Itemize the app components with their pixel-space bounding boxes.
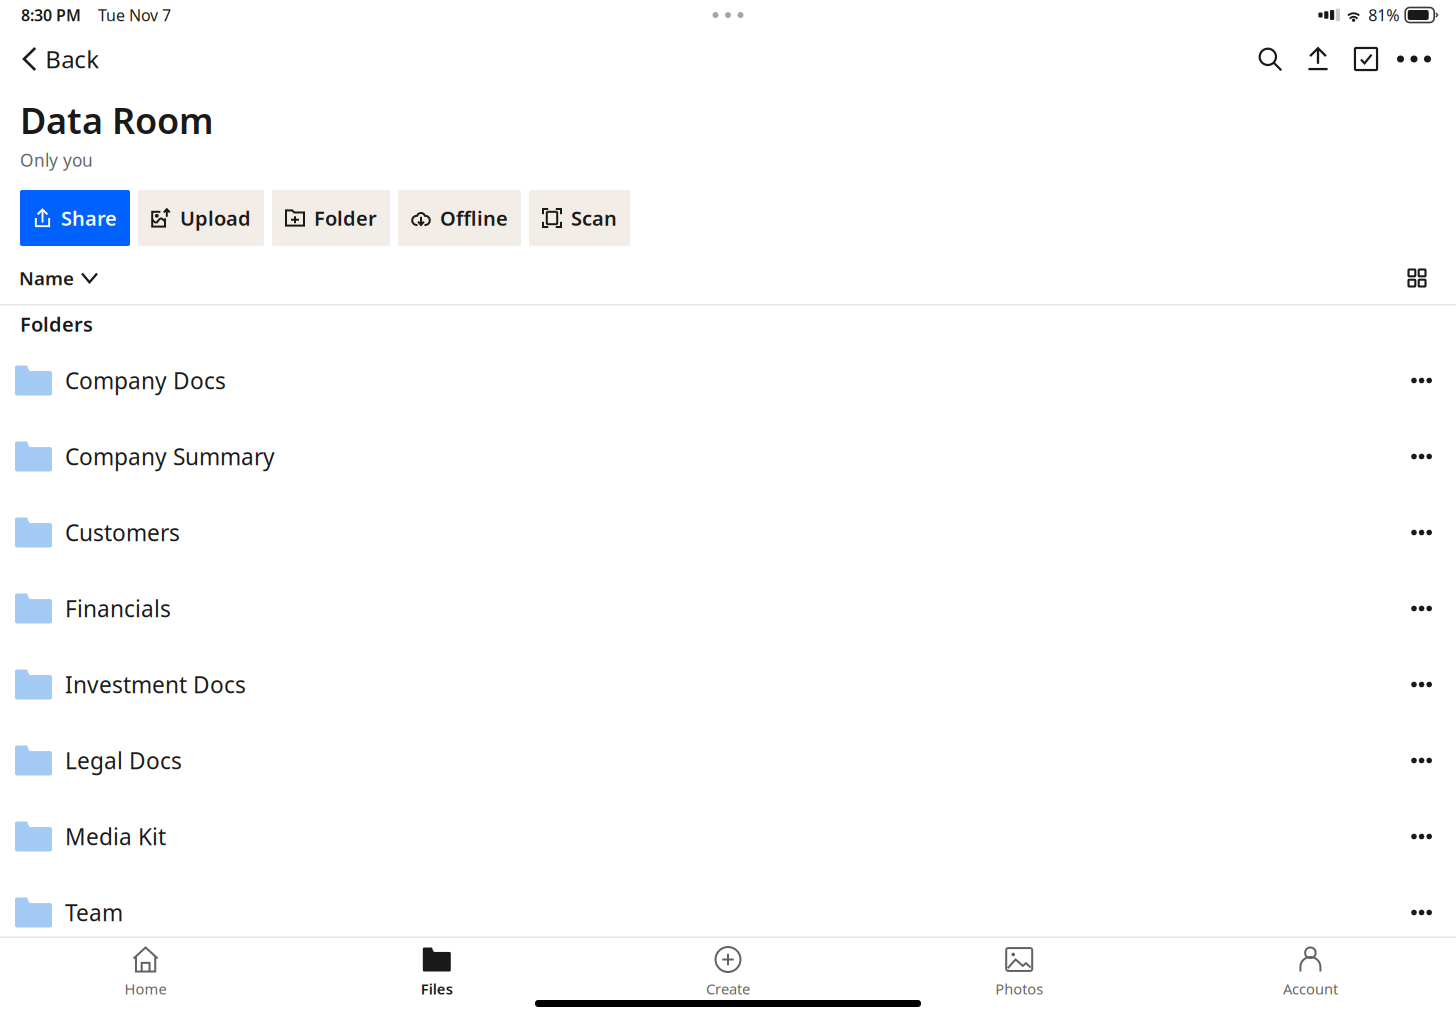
staticText: Folder <box>314 205 377 231</box>
staticText: Media Kit <box>65 821 166 851</box>
staticText: Company Docs <box>65 365 226 395</box>
staticText: Offline <box>440 205 508 231</box>
button[interactable]: Scan <box>529 190 630 246</box>
button[interactable]: Customers <box>0 494 1456 570</box>
staticText: Customers <box>65 517 180 547</box>
staticText: Data Room <box>20 96 214 144</box>
staticText: Only you <box>20 148 93 171</box>
staticText: 81% <box>1368 4 1399 26</box>
button[interactable]: Financials <box>0 570 1456 646</box>
button[interactable]: Upload <box>138 190 264 246</box>
button[interactable]: Investment Docs <box>0 646 1456 722</box>
button[interactable]: Photos <box>874 938 1165 1017</box>
button[interactable]: Team <box>0 874 1456 950</box>
staticText: Scan <box>571 205 617 231</box>
staticText: Legal Docs <box>65 745 182 775</box>
staticText: 8:30 PM <box>21 4 81 26</box>
staticText: Investment Docs <box>65 669 246 699</box>
staticText: Tue Nov 7 <box>98 4 171 26</box>
button[interactable]: Share <box>1294 31 1342 87</box>
button[interactable]: Name <box>0 253 118 303</box>
button[interactable]: Files <box>291 938 582 1017</box>
staticText: Financials <box>65 593 171 623</box>
staticText: Back <box>45 43 99 75</box>
staticText: Files <box>421 979 453 998</box>
button[interactable]: Share <box>20 190 130 246</box>
button[interactable]: Select items <box>1342 31 1390 87</box>
staticText: Team <box>65 897 123 927</box>
button[interactable]: Account <box>1165 938 1456 1017</box>
button[interactable]: Legal Docs <box>0 722 1456 798</box>
button[interactable]: Company Summary <box>0 418 1456 494</box>
button[interactable]: Vendors <box>0 950 1456 1017</box>
button[interactable]: More options <box>1390 31 1438 87</box>
staticText: Photos <box>995 979 1043 998</box>
button[interactable]: Offline <box>398 190 521 246</box>
button[interactable]: Back <box>0 31 113 87</box>
button[interactable]: Company Docs <box>0 342 1456 418</box>
staticText: Name <box>19 266 74 290</box>
staticText: Home <box>125 979 167 998</box>
button[interactable]: Media Kit <box>0 798 1456 874</box>
button[interactable]: Grid view <box>1392 253 1442 303</box>
button[interactable]: Create <box>582 938 874 1017</box>
staticText: Upload <box>180 205 251 231</box>
staticText: Company Summary <box>65 441 275 471</box>
staticText: Vendors <box>65 973 153 1003</box>
staticText: Account <box>1283 979 1338 998</box>
button[interactable]: Search <box>1246 31 1294 87</box>
button[interactable]: Folder <box>272 190 390 246</box>
staticText: Folders <box>20 311 93 337</box>
staticText: Share <box>61 205 117 231</box>
staticText: Create <box>706 979 750 998</box>
button[interactable]: Home <box>0 938 291 1017</box>
